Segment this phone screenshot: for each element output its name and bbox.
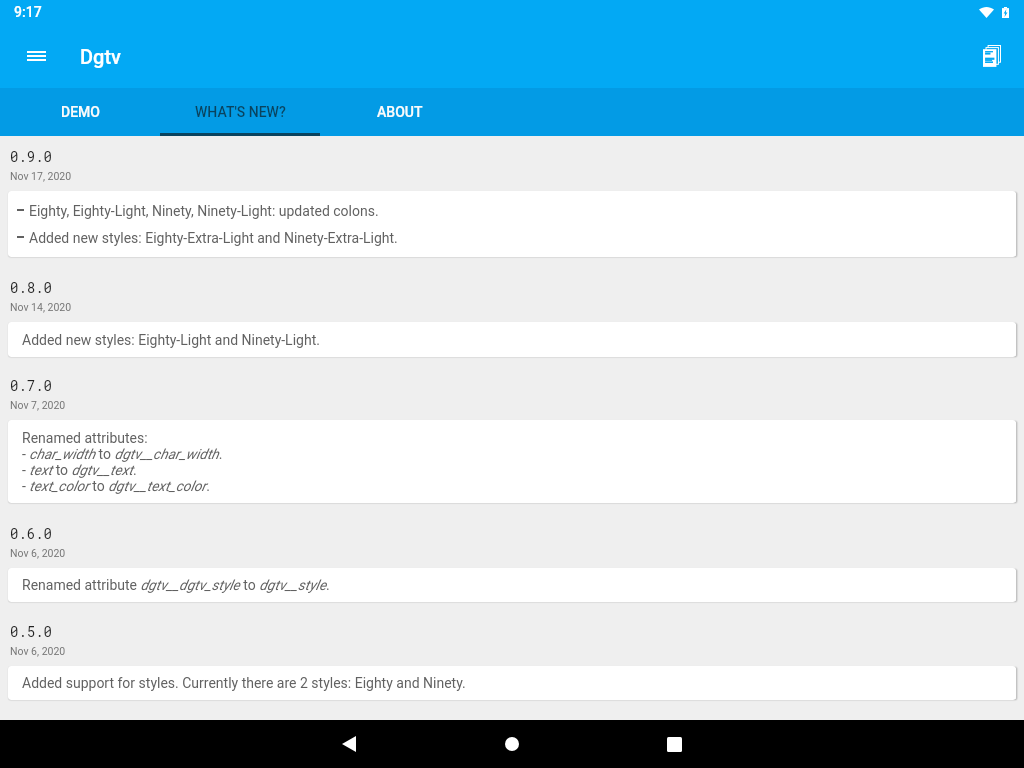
button[interactable]: Added new styles: Eighty-Light and Ninet… [8,322,1016,357]
staticText: 9:17 [14,4,42,20]
staticText: Renamed attribute dgtv__dgtv_style to dg… [22,577,330,593]
staticText: Nov 7, 2020 [10,399,66,411]
staticText: 0.9.0 [10,147,53,165]
button[interactable]: Renamed attributes: - char_width to dgtv… [8,420,1016,503]
staticText: Renamed attributes: - char_width to dgtv… [22,430,223,494]
button[interactable]: Added support for styles. Currently ther… [8,666,1016,700]
staticText: 0.7.0 [10,376,53,394]
button[interactable]: WHAT'S NEW? [160,88,320,136]
button[interactable]: Changelog [968,32,1016,80]
staticText: 0.6.0 [10,524,53,542]
staticText: 0.5.0 [10,622,53,640]
staticText: WHAT'S NEW? [195,104,286,120]
staticText: Added new styles: Eighty-Light and Ninet… [22,332,320,348]
button[interactable]: Open navigation drawer [12,32,60,80]
staticText: Added support for styles. Currently ther… [22,675,466,691]
staticText: Dgtv [80,45,121,68]
staticText: Eighty, Eighty-Light, Ninety, Ninety-Lig… [29,203,379,219]
button[interactable]: DEMO [0,88,160,136]
button[interactable]: Home [488,720,536,768]
staticText: 0.8.0 [10,278,53,296]
staticText: Nov 6, 2020 [10,645,66,657]
button[interactable]: Eighty, Eighty-Light, Ninety, Ninety-Lig… [8,191,1016,257]
button[interactable]: ABOUT [320,88,480,136]
button[interactable]: Renamed attribute dgtv__dgtv_style to dg… [8,568,1016,602]
staticText: Nov 17, 2020 [10,170,72,182]
staticText: Nov 6, 2020 [10,547,66,559]
staticText: Added new styles: Eighty-Extra-Light and… [29,230,398,246]
button[interactable]: Recent apps [650,720,698,768]
staticText: Nov 14, 2020 [10,301,72,313]
staticText: ABOUT [377,104,423,120]
staticText: DEMO [61,104,100,120]
button[interactable]: Back [325,720,373,768]
